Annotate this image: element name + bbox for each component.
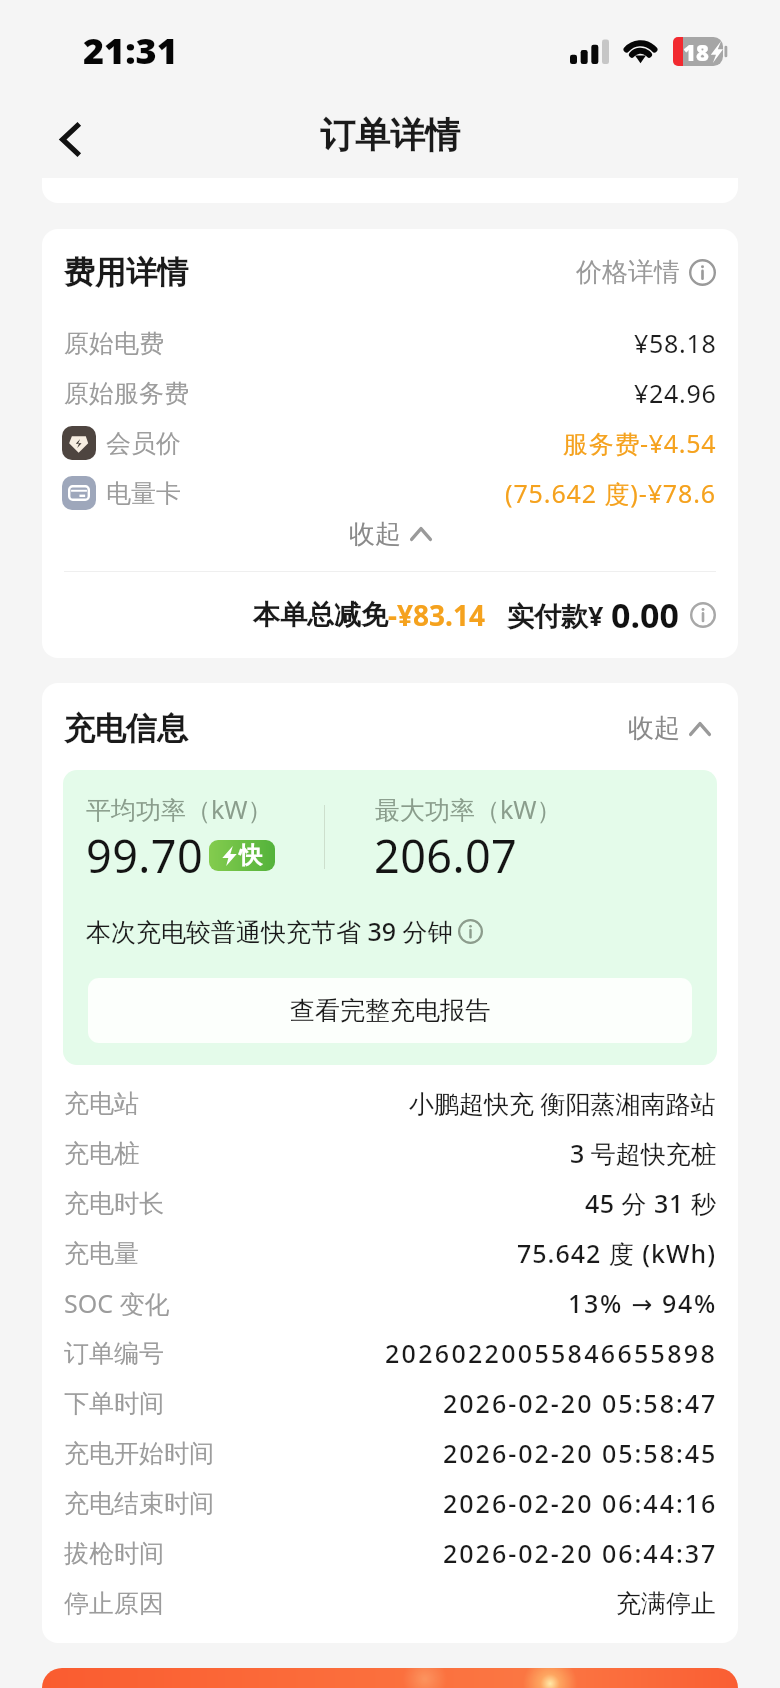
staticText: 13% → 94% [568,1286,718,1320]
staticText: SOC 变化 [64,1286,170,1320]
button[interactable] [42,1668,738,1688]
staticText: (75.642 度)-¥78.6 [505,476,717,510]
button[interactable]: Back [38,103,102,167]
staticText: 20260220055846655898 [385,1336,718,1370]
staticText: -¥83.14 [388,596,485,634]
staticText: 充电信息 [64,709,188,748]
staticText: 电量卡 [106,478,181,509]
staticText: 快 [239,841,262,870]
staticText: 2026-02-20 05:58:45 [443,1436,718,1470]
staticText: 平均功率（kW） [86,792,273,826]
staticText: 2026-02-20 06:44:37 [443,1536,718,1570]
staticText: 本次充电较普通快充节省 39 分钟 [86,914,453,948]
button[interactable]: 收起 [628,712,711,745]
staticText: 会员价 [106,428,181,459]
staticText: 原始服务费 [64,378,189,409]
staticText: 2026-02-20 06:44:16 [443,1486,718,1520]
staticText: 45 分 31 秒 [585,1186,717,1220]
staticText: 价格详情 [576,256,680,289]
staticText: 本单总减免 [253,598,388,632]
staticText: 充电结束时间 [64,1488,214,1519]
staticText: 最大功率（kW） [375,792,562,826]
staticText: 收起 [628,712,680,745]
staticText: 充电量 [64,1238,139,1269]
staticText: 费用详情 [64,253,188,292]
staticText: 下单时间 [64,1388,164,1419]
staticText: ¥24.96 [634,376,717,410]
staticText: 206.07 [374,825,518,886]
staticText: 原始电费 [64,328,164,359]
staticText: 21:31 [83,26,178,75]
staticText: 3 号超快充桩 [570,1136,716,1170]
staticText: 小鹏超快充 衡阳蒸湘南路站 [409,1086,716,1120]
staticText: 充电开始时间 [64,1438,214,1469]
staticText: 充满停止 [616,1588,716,1619]
staticText: 收起 [349,518,401,550]
staticText: 订单详情 [320,113,460,157]
button[interactable]: 价格详情 [576,256,716,289]
staticText: 充电桩 [64,1138,139,1169]
staticText: 服务费-¥4.54 [563,426,717,460]
staticText: 0.00 [611,592,679,638]
staticText: ¥58.18 [634,326,717,360]
staticText: 2026-02-20 05:58:47 [443,1386,718,1420]
staticText: 75.642 度 (kWh) [517,1236,717,1270]
button[interactable]: 收起 [64,518,716,550]
staticText: 订单编号 [64,1338,164,1369]
button[interactable]: 查看完整充电报告 [88,978,692,1043]
staticText: 充电时长 [64,1188,164,1219]
staticText: 99.70 [86,825,204,886]
staticText: 拔枪时间 [64,1538,164,1569]
staticText: 停止原因 [64,1588,164,1619]
staticText: 充电站 [64,1088,139,1119]
staticText: 18 [683,37,709,66]
staticText: 查看完整充电报告 [290,995,490,1026]
staticText: 实付款¥ [507,597,604,634]
